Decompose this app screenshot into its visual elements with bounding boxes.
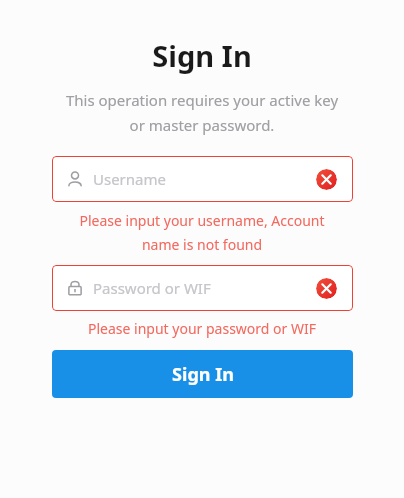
button[interactable]: Sign In [52, 350, 353, 398]
button[interactable]: Password or WIF [52, 265, 353, 311]
staticText: Please input your username, Account name… [37, 211, 367, 254]
staticText: Sign In [152, 36, 252, 75]
staticText: Sign In [172, 362, 234, 387]
staticText: This operation requires your active key … [37, 90, 367, 135]
staticText: Please input your password or WIF [37, 319, 367, 338]
button[interactable]: Clear [316, 169, 337, 190]
button[interactable]: Username [52, 156, 353, 202]
staticText: Password or WIF [93, 278, 211, 298]
staticText: Username [93, 169, 166, 189]
button[interactable]: Clear [316, 278, 337, 299]
